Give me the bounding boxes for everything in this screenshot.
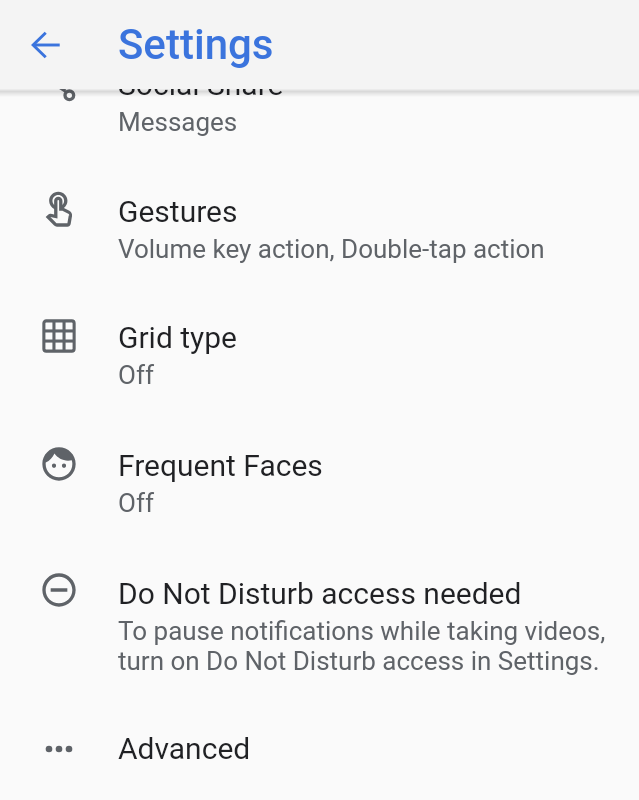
button[interactable]: Grid type [0, 294, 639, 422]
staticText: Messages [118, 107, 610, 137]
button[interactable]: Frequent Faces [0, 422, 639, 550]
staticText: Frequent Faces [118, 448, 323, 483]
staticText: Volume key action, Double-tap action [118, 234, 610, 264]
staticText: Settings [118, 20, 274, 69]
staticText: Do Not Disturb access needed [118, 576, 522, 611]
staticText: Advanced [118, 731, 251, 766]
staticText: Gestures [118, 194, 238, 229]
button[interactable]: Navigate up [21, 20, 71, 70]
staticText: To pause notifications while taking vide… [118, 616, 610, 676]
staticText: Grid type [118, 320, 238, 355]
staticText: Off [118, 488, 610, 518]
button[interactable]: Advanced [0, 705, 639, 800]
staticText: Off [118, 360, 610, 390]
button[interactable]: Gestures [0, 168, 639, 294]
staticText: Social Share [118, 67, 284, 102]
button[interactable]: Do Not Disturb access needed [0, 550, 639, 705]
button[interactable]: Social Share [0, 42, 639, 168]
